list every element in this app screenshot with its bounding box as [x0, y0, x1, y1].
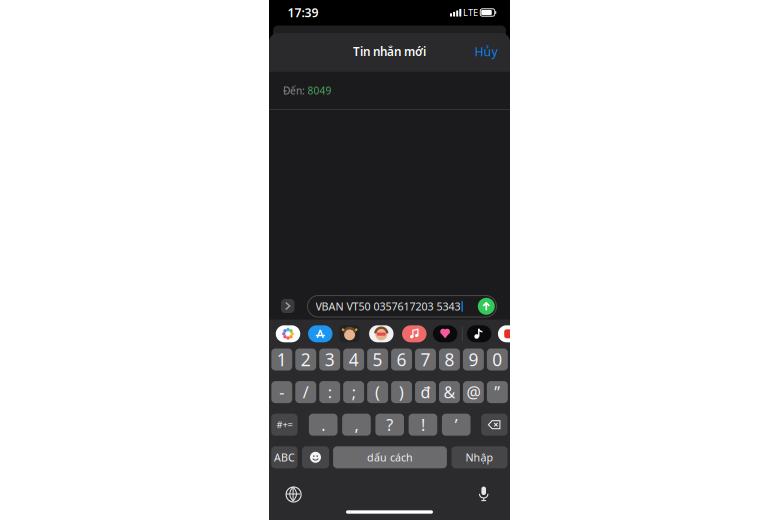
staticText: /: [303, 381, 309, 403]
staticText: 8049: [307, 84, 331, 97]
button[interactable]: Dictation: [479, 486, 489, 502]
button[interactable]: 6: [391, 348, 412, 370]
staticText: Nhập: [465, 450, 493, 464]
button[interactable]: 4: [343, 348, 364, 370]
button[interactable]: Expand apps: [281, 299, 294, 313]
button[interactable]: ”: [487, 381, 508, 403]
staticText: #+=: [276, 418, 292, 431]
staticText: ’: [455, 414, 458, 435]
staticText: @: [466, 381, 480, 403]
button[interactable]: 1: [271, 348, 292, 370]
staticText: (: [375, 381, 380, 403]
button[interactable]: ): [391, 381, 412, 403]
button[interactable]: .: [309, 414, 337, 436]
staticText: !: [421, 414, 425, 435]
button[interactable]: Stickers: [369, 325, 394, 342]
button[interactable]: TikTok: [467, 325, 491, 342]
button[interactable]: Photos: [276, 325, 300, 342]
staticText: ;: [352, 381, 356, 403]
staticText: &: [443, 381, 455, 403]
button[interactable]: 9: [463, 348, 484, 370]
staticText: 4: [349, 348, 359, 371]
button[interactable]: 3: [319, 348, 340, 370]
staticText: ,: [354, 414, 358, 435]
staticText: -: [279, 381, 284, 403]
button[interactable]: #+=: [271, 414, 297, 436]
staticText: 9: [468, 348, 478, 371]
staticText: ): [399, 381, 404, 403]
button[interactable]: &: [439, 381, 460, 403]
staticText: Đến:: [283, 84, 305, 97]
button[interactable]: :: [319, 381, 340, 403]
staticText: 2: [301, 348, 311, 371]
staticText: 7: [420, 348, 430, 371]
button[interactable]: Hủy: [471, 43, 501, 59]
button[interactable]: /: [295, 381, 316, 403]
staticText: 6: [397, 348, 407, 371]
staticText: ?: [386, 414, 393, 435]
staticText: dấu cách: [367, 450, 413, 464]
button[interactable]: Next keyboard: [286, 486, 302, 502]
staticText: 8: [444, 348, 454, 371]
button[interactable]: Nhập: [451, 446, 507, 468]
button[interactable]: ’: [442, 414, 470, 436]
staticText: 0: [492, 348, 502, 371]
button[interactable]: Music: [402, 325, 427, 342]
button[interactable]: (: [367, 381, 388, 403]
staticText: 17:39: [287, 4, 318, 21]
staticText: LTE: [463, 6, 478, 19]
staticText: :: [328, 381, 332, 403]
staticText: 5: [373, 348, 383, 371]
staticText: .: [321, 414, 325, 435]
staticText: đ: [420, 381, 430, 403]
staticText: ”: [494, 381, 500, 403]
button[interactable]: 5: [367, 348, 388, 370]
button[interactable]: Memoji Stickers: [340, 325, 360, 342]
button[interactable]: Send: [478, 298, 495, 315]
button[interactable]: 7: [415, 348, 436, 370]
button[interactable]: Delete: [481, 414, 507, 436]
button[interactable]: ,: [342, 414, 371, 436]
button[interactable]: Digital Touch: [433, 325, 457, 342]
staticText: ABC: [274, 450, 295, 464]
staticText: 1: [277, 348, 287, 371]
button[interactable]: App Store: [308, 325, 333, 342]
button[interactable]: Emoji: [302, 446, 329, 468]
staticText: 3: [325, 348, 335, 371]
button[interactable]: -: [271, 381, 292, 403]
button[interactable]: !: [409, 414, 437, 436]
button[interactable]: ;: [343, 381, 364, 403]
button[interactable]: ?: [375, 414, 404, 436]
button[interactable]: @: [463, 381, 484, 403]
button[interactable]: dấu cách: [333, 446, 447, 468]
staticText: Tin nhắn mới: [353, 43, 426, 59]
button[interactable]: đ: [415, 381, 436, 403]
button[interactable]: 0: [487, 348, 508, 370]
button[interactable]: 8: [439, 348, 460, 370]
staticText: Hủy: [474, 43, 497, 60]
staticText: VBAN VT50 0357617203 5343: [315, 299, 460, 313]
button[interactable]: 2: [295, 348, 316, 370]
button[interactable]: YouTube: [498, 325, 522, 342]
button[interactable]: ABC: [271, 446, 297, 468]
